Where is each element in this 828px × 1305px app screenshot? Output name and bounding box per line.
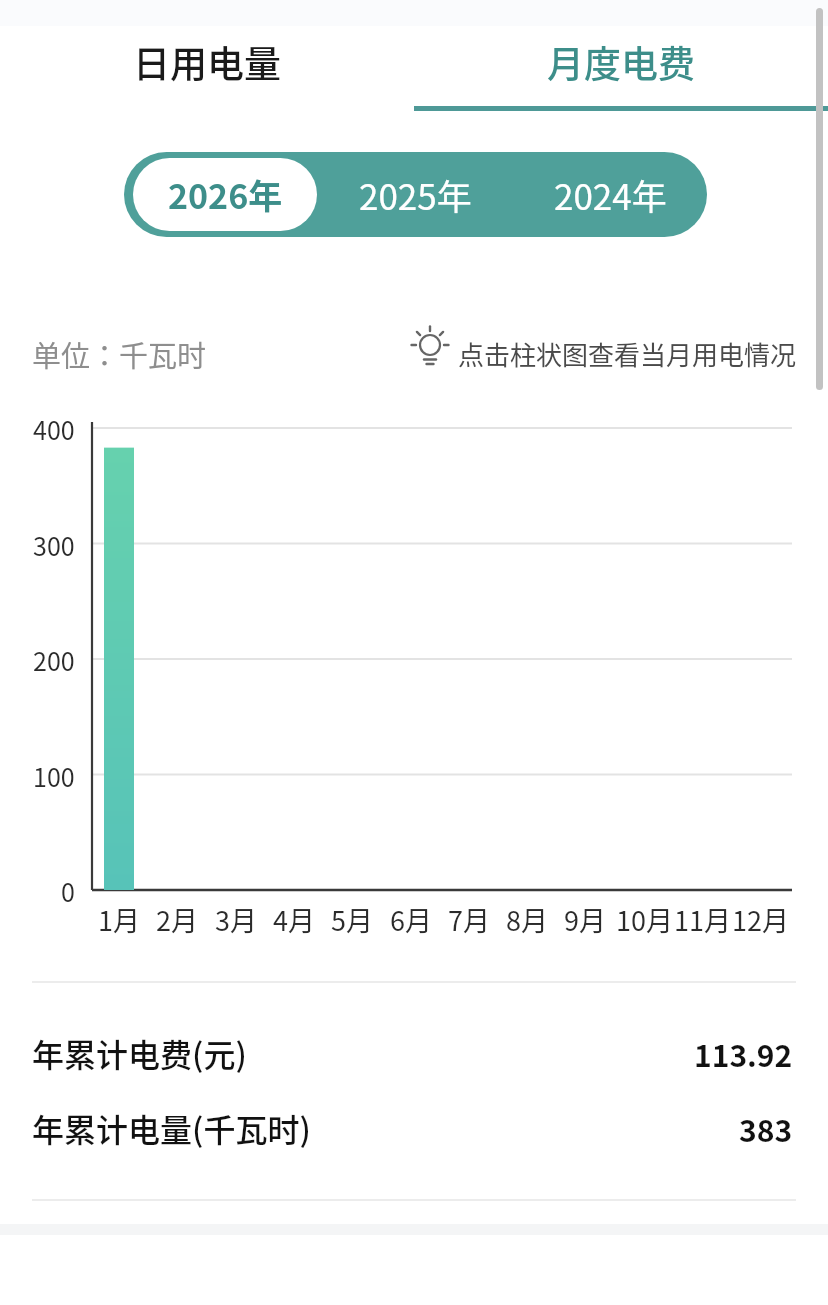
button[interactable]: 年累计电费(元) <box>32 1030 793 1076</box>
staticText: 1月 <box>98 900 140 937</box>
staticText: 300 <box>33 527 75 561</box>
staticText: 100 <box>33 758 75 792</box>
staticText: 400 <box>33 411 75 445</box>
staticText: 10月 <box>616 900 673 937</box>
staticText: 4月 <box>273 900 315 937</box>
staticText: 年累计电费(元) <box>32 1030 247 1076</box>
staticText: 8月 <box>506 900 548 937</box>
staticText: 3月 <box>215 900 257 937</box>
staticText: 2月 <box>156 900 198 937</box>
staticText: 200 <box>33 642 75 676</box>
staticText: 9月 <box>564 900 606 937</box>
staticText: 2024年 <box>554 169 667 220</box>
button[interactable] <box>409 324 451 368</box>
staticText: 点击柱状图查看当月用电情况 <box>458 335 797 373</box>
staticText: 113.92 <box>694 1032 793 1075</box>
staticText: 日用电量 <box>133 35 281 89</box>
button[interactable]: 2025年 <box>318 152 513 237</box>
staticText: 单位：千瓦时 <box>32 333 207 375</box>
staticText: 5月 <box>331 900 373 937</box>
staticText: 383 <box>739 1107 793 1150</box>
staticText: 2025年 <box>359 169 472 220</box>
button[interactable]: 月度电费 <box>414 22 828 101</box>
staticText: 月度电费 <box>547 35 695 89</box>
button[interactable]: 年累计电量(千瓦时) <box>32 1105 793 1151</box>
staticText: 2026年 <box>168 170 283 219</box>
staticText: 6月 <box>390 900 432 937</box>
staticText: 11月 <box>674 900 731 937</box>
button[interactable]: 2024年 <box>513 152 707 237</box>
staticText: 0 <box>61 873 75 907</box>
staticText: 7月 <box>448 900 490 937</box>
staticText: 12月 <box>732 900 789 937</box>
button[interactable]: 2026年 <box>133 158 317 231</box>
button[interactable]: 日用电量 <box>0 22 414 101</box>
staticText: 年累计电量(千瓦时) <box>32 1105 311 1151</box>
